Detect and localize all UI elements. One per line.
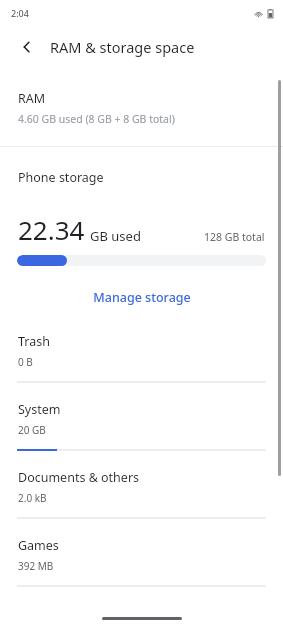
staticText: Phone storage	[18, 169, 104, 186]
staticText: RAM	[18, 90, 46, 107]
staticText: 392 MB	[18, 559, 54, 573]
staticText: System	[18, 401, 61, 418]
staticText: GB used	[90, 227, 141, 245]
staticText: Games	[18, 537, 59, 554]
button[interactable]: Trash	[0, 327, 283, 395]
staticText: 2.0 kB	[18, 491, 47, 505]
staticText: 20 GB	[18, 423, 46, 437]
staticText: Manage storage	[93, 289, 191, 306]
staticText: 2:04	[11, 7, 29, 19]
staticText: Documents & others	[18, 469, 140, 486]
button[interactable]: Games	[0, 531, 283, 599]
staticText: Trash	[18, 333, 50, 350]
button[interactable]: RAM	[0, 88, 283, 128]
button[interactable]: Manage storage	[0, 282, 283, 313]
button[interactable]: Documents & others	[0, 463, 283, 531]
staticText: 22.34	[18, 212, 85, 247]
staticText: RAM & storage space	[50, 37, 195, 57]
staticText: 0 B	[18, 355, 33, 369]
staticText: 4.60 GB used (8 GB + 8 GB total)	[18, 112, 175, 126]
button[interactable]: Back	[12, 32, 42, 62]
staticText: 128 GB total	[204, 230, 265, 244]
button[interactable]: System	[0, 395, 283, 463]
